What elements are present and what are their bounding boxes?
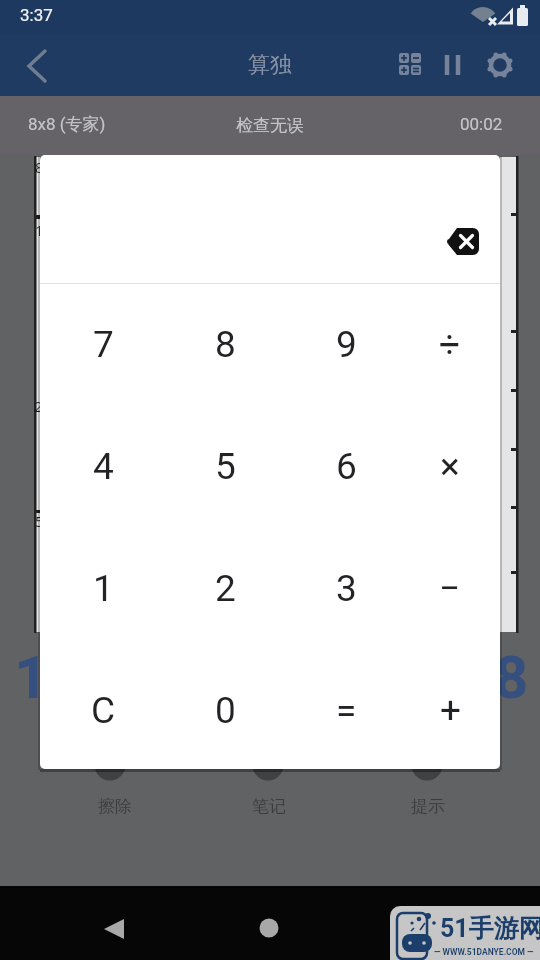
staticText: 擦除 [98, 796, 132, 817]
staticText: − [439, 567, 461, 610]
staticText: 1 [14, 642, 49, 712]
staticText: 51手游网 [440, 913, 540, 944]
staticText: 1 [35, 220, 40, 240]
button[interactable]: 5 [180, 421, 270, 511]
staticText: 提示 [411, 796, 445, 817]
button[interactable]: 提示 [393, 792, 463, 820]
button[interactable]: 9 [301, 299, 391, 389]
staticText: C [91, 689, 116, 732]
button[interactable]: 2 [180, 543, 270, 633]
button[interactable]: − [405, 543, 495, 633]
button[interactable] [94, 909, 134, 949]
button[interactable]: C [58, 665, 148, 755]
staticText: × [440, 445, 460, 488]
staticText: 7 [93, 323, 114, 366]
staticText: 6 [336, 445, 357, 488]
button[interactable]: 7 [58, 299, 148, 389]
staticText: 检查无误 [236, 115, 304, 136]
button[interactable] [249, 908, 289, 948]
staticText: 0 [215, 689, 236, 732]
staticText: — WWW.51DANYE.COM — [434, 947, 534, 957]
staticText: 算独 [248, 51, 292, 79]
staticText: 8 [215, 323, 236, 366]
staticText: 8 [35, 157, 40, 177]
button[interactable]: 3 [301, 543, 391, 633]
staticText: + [440, 689, 461, 732]
staticText: 00:02 [460, 114, 503, 134]
button[interactable]: 8 [180, 299, 270, 389]
button[interactable]: 4 [58, 421, 148, 511]
button[interactable]: 笔记 [234, 792, 304, 820]
staticText: 3:37 [20, 5, 53, 25]
button[interactable]: + [405, 665, 495, 755]
button[interactable] [430, 216, 496, 266]
staticText: = [336, 689, 357, 732]
staticText: 2 [215, 567, 236, 610]
staticText: 5 [35, 511, 40, 531]
staticText: 8x8 (专家) [28, 114, 106, 135]
staticText: 9 [336, 323, 357, 366]
staticText: ÷ [439, 323, 461, 366]
button[interactable]: 6 [301, 421, 391, 511]
staticText: 2 [35, 396, 39, 416]
staticText: 4 [93, 445, 114, 488]
button[interactable] [12, 44, 56, 88]
staticText: 8 [494, 642, 529, 712]
staticText: 3 [336, 567, 357, 610]
button[interactable] [436, 46, 470, 84]
button[interactable]: × [405, 421, 495, 511]
button[interactable] [392, 46, 430, 84]
staticText: 1 [93, 567, 114, 610]
staticText: 笔记 [252, 796, 286, 817]
button[interactable]: 擦除 [80, 792, 150, 820]
button[interactable]: = [301, 665, 391, 755]
button[interactable] [478, 46, 522, 84]
button[interactable]: 1 [58, 543, 148, 633]
button[interactable]: 0 [180, 665, 270, 755]
staticText: 5 [215, 445, 236, 488]
button[interactable]: ÷ [405, 299, 495, 389]
